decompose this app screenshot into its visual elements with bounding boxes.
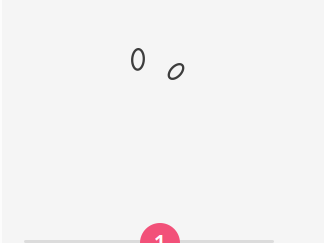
staticText: 1 — [153, 228, 166, 243]
button[interactable]: Step 1 — [140, 223, 180, 243]
